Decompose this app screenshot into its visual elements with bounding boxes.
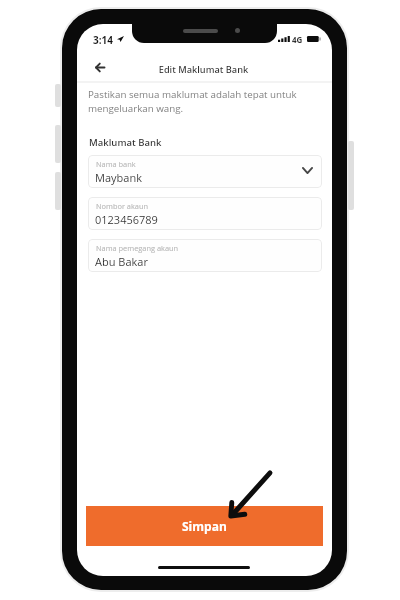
staticText: Nama pemegang akaun xyxy=(96,243,179,253)
staticText: Nama bank xyxy=(96,159,136,169)
other: Expand bank list xyxy=(302,167,313,174)
staticText: Simpan xyxy=(182,518,227,534)
staticText: Maklumat Bank xyxy=(89,136,162,149)
button[interactable]: Back xyxy=(89,56,111,78)
staticText: Nombor akaun xyxy=(96,201,149,211)
button[interactable]: Nombor akaun xyxy=(88,197,322,230)
staticText: 3:14 xyxy=(93,33,113,47)
staticText: Edit Maklumat Bank xyxy=(77,63,331,76)
staticText: Pastikan semua maklumat adalah tepat unt… xyxy=(88,88,303,115)
staticText: 0123456789 xyxy=(95,212,158,227)
staticText: Maybank xyxy=(95,170,142,185)
button[interactable]: Nama bank xyxy=(88,155,322,188)
button[interactable]: Simpan xyxy=(86,506,323,546)
staticText: Abu Bakar xyxy=(95,254,148,269)
button[interactable]: Nama pemegang akaun xyxy=(88,239,322,272)
staticText: 4G xyxy=(292,34,303,45)
